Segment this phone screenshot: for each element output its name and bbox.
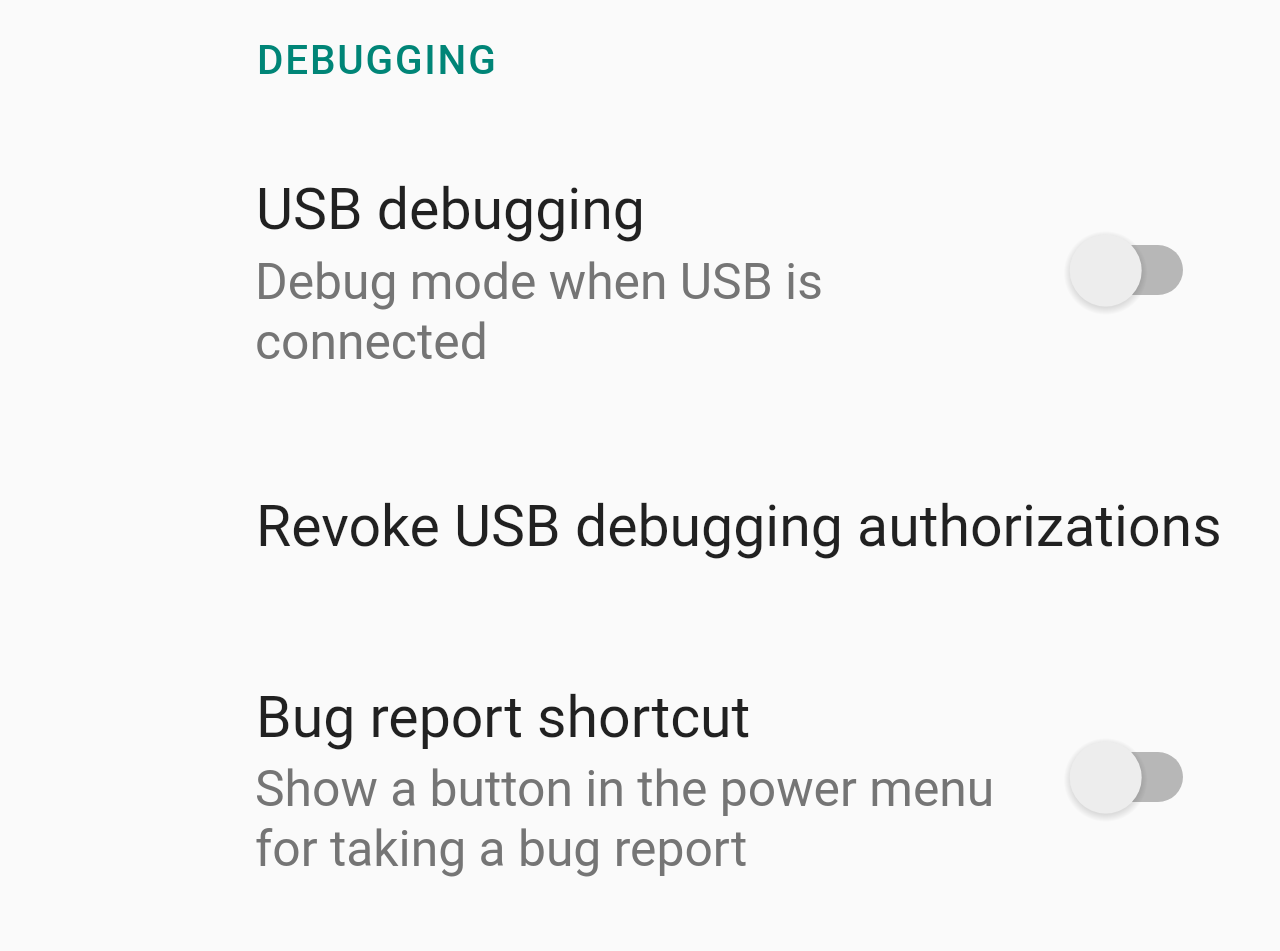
- button[interactable]: Bug report shortcut: [0, 653, 1280, 907]
- button[interactable]: Revoke USB debugging authorizations: [0, 399, 1280, 653]
- staticText: Revoke USB debugging authorizations: [256, 493, 1222, 560]
- staticText: Debug mode when USB is connected: [255, 253, 823, 371]
- staticText: USB debugging: [256, 176, 645, 243]
- button[interactable]: [1060, 208, 1200, 332]
- button[interactable]: [1060, 715, 1200, 839]
- staticText: Show a button in the power menu for taki…: [255, 760, 995, 878]
- staticText: DEBUGGING: [257, 36, 498, 83]
- button[interactable]: USB debugging: [0, 145, 1280, 399]
- staticText: Bug report shortcut: [256, 684, 751, 751]
